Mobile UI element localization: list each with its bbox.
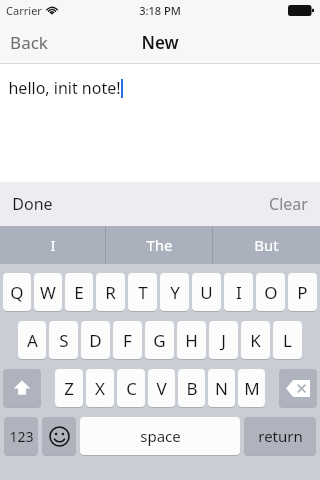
button[interactable]: O — [256, 273, 285, 311]
staticText: New — [141, 31, 179, 54]
staticText: T — [138, 281, 148, 304]
button[interactable]: A — [18, 321, 46, 359]
button[interactable]: T — [128, 273, 157, 311]
staticText: Done — [12, 193, 53, 215]
button[interactable]: R — [96, 273, 125, 311]
staticText: X — [95, 377, 105, 400]
staticText: O — [264, 281, 278, 304]
staticText: F — [123, 329, 132, 352]
staticText: G — [153, 329, 166, 352]
button[interactable]: Z — [55, 369, 83, 407]
staticText: D — [89, 329, 102, 352]
button[interactable]: M — [238, 369, 265, 407]
button[interactable]: Backspace — [279, 369, 317, 407]
button[interactable]: G — [145, 321, 174, 359]
staticText: 3:18 PM — [139, 3, 181, 18]
staticText: U — [200, 281, 213, 304]
button[interactable]: Shift — [3, 369, 41, 407]
button[interactable]: C — [117, 369, 145, 407]
button[interactable]: F — [113, 321, 142, 359]
button[interactable]: E — [65, 273, 93, 311]
staticText: N — [215, 377, 228, 400]
staticText: R — [105, 281, 116, 304]
button[interactable]: space — [80, 417, 240, 455]
button[interactable]: Done — [0, 184, 65, 224]
staticText: E — [74, 281, 84, 304]
button[interactable]: H — [177, 321, 206, 359]
staticText: return — [258, 426, 303, 446]
button[interactable]: D — [81, 321, 110, 359]
staticText: Back — [10, 31, 48, 54]
staticText: Y — [170, 281, 180, 304]
staticText: I — [50, 235, 56, 255]
button[interactable]: S — [49, 321, 78, 359]
staticText: The — [146, 235, 173, 255]
staticText: Z — [64, 377, 74, 400]
staticText: P — [297, 281, 308, 304]
staticText: Q — [10, 281, 24, 304]
staticText: W — [40, 281, 56, 304]
staticText: J — [221, 329, 226, 352]
button[interactable]: Q — [3, 273, 31, 311]
staticText: I — [236, 281, 242, 304]
staticText: B — [186, 377, 198, 400]
button[interactable]: V — [148, 369, 175, 407]
staticText: L — [283, 329, 292, 352]
button[interactable]: N — [208, 369, 235, 407]
button[interactable]: But — [213, 226, 320, 264]
button[interactable]: K — [241, 321, 270, 359]
staticText: M — [244, 377, 260, 400]
button[interactable]: I — [0, 226, 106, 264]
button[interactable]: Emoji — [42, 417, 76, 455]
button[interactable]: U — [192, 273, 221, 311]
button[interactable]: hello, init note! — [0, 64, 320, 182]
button[interactable]: L — [273, 321, 302, 359]
button[interactable]: B — [178, 369, 205, 407]
staticText: K — [250, 329, 261, 352]
button[interactable]: The — [106, 226, 213, 264]
staticText: H — [185, 329, 198, 352]
button[interactable]: I — [224, 273, 253, 311]
staticText: hello, init note! — [8, 77, 121, 99]
button[interactable]: X — [86, 369, 114, 407]
button[interactable]: P — [288, 273, 317, 311]
staticText: space — [140, 426, 181, 446]
button[interactable]: J — [209, 321, 238, 359]
staticText: S — [59, 329, 69, 352]
staticText: A — [27, 329, 38, 352]
staticText: 123 — [9, 427, 34, 446]
button[interactable]: return — [244, 417, 316, 455]
button[interactable]: Clear — [257, 184, 320, 224]
staticText: V — [156, 377, 167, 400]
button[interactable]: Y — [160, 273, 189, 311]
button[interactable]: 123 — [4, 417, 38, 455]
staticText: But — [254, 235, 279, 255]
button[interactable]: W — [34, 273, 62, 311]
staticText: Carrier — [6, 3, 42, 18]
button[interactable]: Back — [0, 23, 62, 62]
staticText: Clear — [269, 193, 308, 215]
staticText: C — [126, 377, 137, 400]
